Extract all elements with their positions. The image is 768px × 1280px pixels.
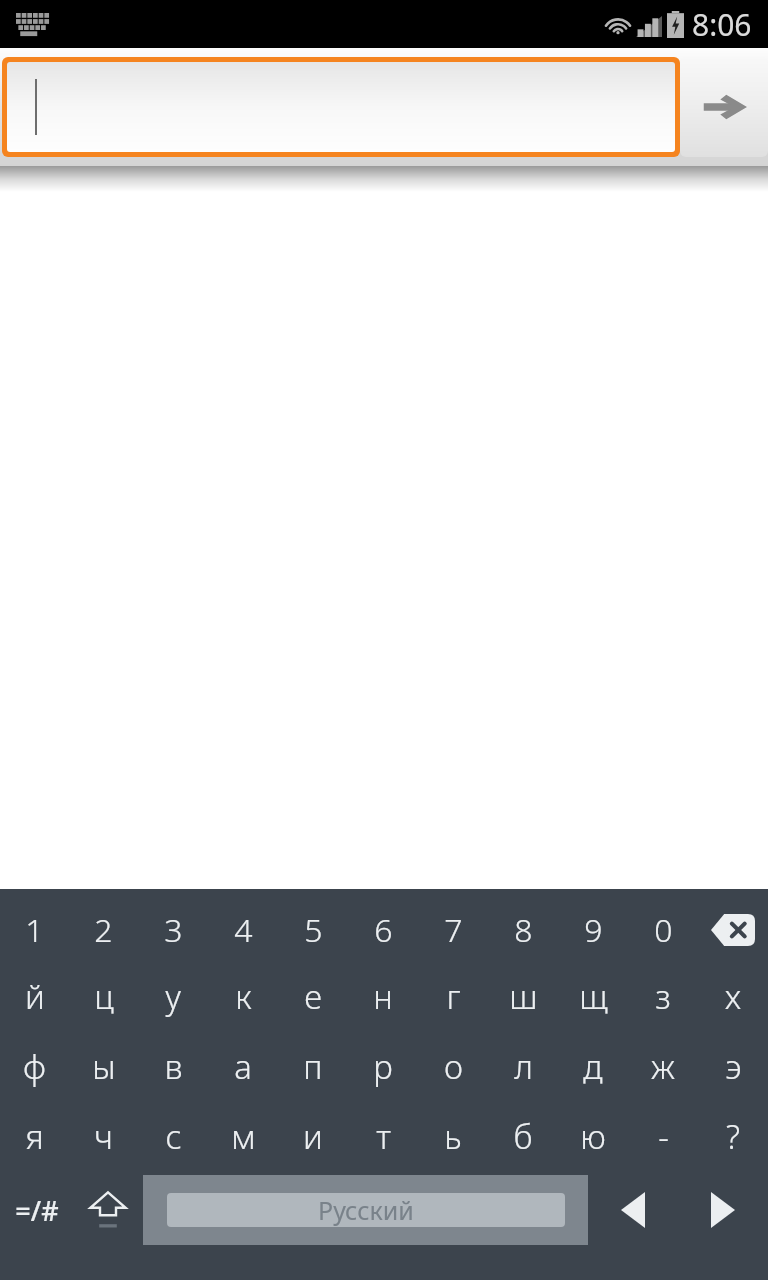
- staticText: а: [234, 1044, 252, 1089]
- staticText: е: [304, 974, 322, 1019]
- staticText: ш: [509, 974, 538, 1019]
- button[interactable]: 7: [418, 899, 488, 961]
- staticText: н: [373, 974, 393, 1019]
- button[interactable]: Backspace: [698, 899, 768, 961]
- staticText: ю: [580, 1114, 606, 1159]
- button[interactable]: Move cursor left: [588, 1171, 678, 1249]
- staticText: Русский: [318, 1193, 414, 1227]
- button[interactable]: Shift: [73, 1171, 143, 1249]
- staticText: ы: [92, 1044, 116, 1089]
- staticText: т: [376, 1114, 391, 1159]
- button[interactable]: ц: [69, 961, 138, 1031]
- staticText: 6: [374, 908, 393, 952]
- button[interactable]: з: [628, 961, 698, 1031]
- button[interactable]: х: [698, 961, 768, 1031]
- button[interactable]: ч: [69, 1101, 138, 1171]
- staticText: 3: [164, 908, 183, 952]
- button[interactable]: т: [348, 1101, 418, 1171]
- staticText: с: [165, 1114, 182, 1159]
- button[interactable]: 9: [558, 899, 628, 961]
- button[interactable]: э: [698, 1031, 768, 1101]
- button[interactable]: -: [628, 1101, 698, 1171]
- staticText: п: [303, 1044, 323, 1089]
- button[interactable]: 8: [488, 899, 558, 961]
- button[interactable]: 4: [208, 899, 278, 961]
- button[interactable]: г: [418, 961, 488, 1031]
- staticText: 8:06: [692, 4, 752, 45]
- staticText: 2: [94, 908, 113, 952]
- staticText: 0: [654, 908, 673, 952]
- staticText: ?: [726, 1114, 740, 1159]
- staticText: щ: [579, 974, 608, 1019]
- staticText: ц: [94, 974, 114, 1019]
- staticText: б: [513, 1114, 533, 1159]
- staticText: ь: [444, 1114, 462, 1159]
- staticText: з: [655, 974, 671, 1019]
- button[interactable]: й: [0, 961, 69, 1031]
- staticText: 8: [514, 908, 533, 952]
- button[interactable]: =/#: [0, 1171, 73, 1249]
- staticText: й: [25, 974, 45, 1019]
- button[interactable]: 6: [348, 899, 418, 961]
- staticText: ч: [94, 1114, 113, 1159]
- button[interactable]: а: [208, 1031, 278, 1101]
- button[interactable]: Move cursor right: [678, 1171, 768, 1249]
- staticText: ж: [651, 1044, 675, 1089]
- staticText: о: [444, 1044, 463, 1089]
- button[interactable]: п: [278, 1031, 348, 1101]
- staticText: д: [583, 1044, 603, 1089]
- button[interactable]: я: [0, 1101, 69, 1171]
- button[interactable]: у: [138, 961, 208, 1031]
- button[interactable]: к: [208, 961, 278, 1031]
- button[interactable]: ь: [418, 1101, 488, 1171]
- staticText: я: [25, 1114, 44, 1159]
- staticText: р: [373, 1044, 393, 1089]
- button[interactable]: Search: [680, 57, 768, 157]
- staticText: х: [725, 974, 741, 1019]
- button[interactable]: в: [138, 1031, 208, 1101]
- button[interactable]: ы: [69, 1031, 138, 1101]
- button[interactable]: р: [348, 1031, 418, 1101]
- staticText: 7: [444, 908, 463, 952]
- button[interactable]: 1: [0, 899, 69, 961]
- staticText: л: [514, 1044, 533, 1089]
- button[interactable]: м: [208, 1101, 278, 1171]
- button[interactable]: л: [488, 1031, 558, 1101]
- staticText: 1: [25, 908, 44, 952]
- button[interactable]: о: [418, 1031, 488, 1101]
- button[interactable]: ф: [0, 1031, 69, 1101]
- button[interactable]: 2: [69, 899, 138, 961]
- staticText: в: [164, 1044, 183, 1089]
- button[interactable]: д: [558, 1031, 628, 1101]
- staticText: 5: [304, 908, 323, 952]
- staticText: э: [725, 1044, 742, 1089]
- staticText: у: [165, 974, 181, 1019]
- button[interactable]: ю: [558, 1101, 628, 1171]
- button[interactable]: с: [138, 1101, 208, 1171]
- button[interactable]: щ: [558, 961, 628, 1031]
- button[interactable]: 3: [138, 899, 208, 961]
- staticText: ф: [23, 1044, 46, 1089]
- button[interactable]: 0: [628, 899, 698, 961]
- staticText: к: [235, 974, 252, 1019]
- staticText: 9: [584, 908, 603, 952]
- button[interactable]: и: [278, 1101, 348, 1171]
- button[interactable]: б: [488, 1101, 558, 1171]
- staticText: -: [658, 1114, 669, 1159]
- staticText: 4: [234, 908, 253, 952]
- staticText: м: [231, 1114, 256, 1159]
- staticText: и: [303, 1114, 323, 1159]
- button[interactable]: ж: [628, 1031, 698, 1101]
- button[interactable]: 5: [278, 899, 348, 961]
- button[interactable]: е: [278, 961, 348, 1031]
- staticText: =/#: [15, 1192, 59, 1229]
- button[interactable]: Русский: [143, 1175, 588, 1245]
- button[interactable]: [7, 62, 675, 152]
- button[interactable]: ш: [488, 961, 558, 1031]
- button[interactable]: ?: [698, 1101, 768, 1171]
- button[interactable]: н: [348, 961, 418, 1031]
- staticText: г: [446, 974, 461, 1019]
